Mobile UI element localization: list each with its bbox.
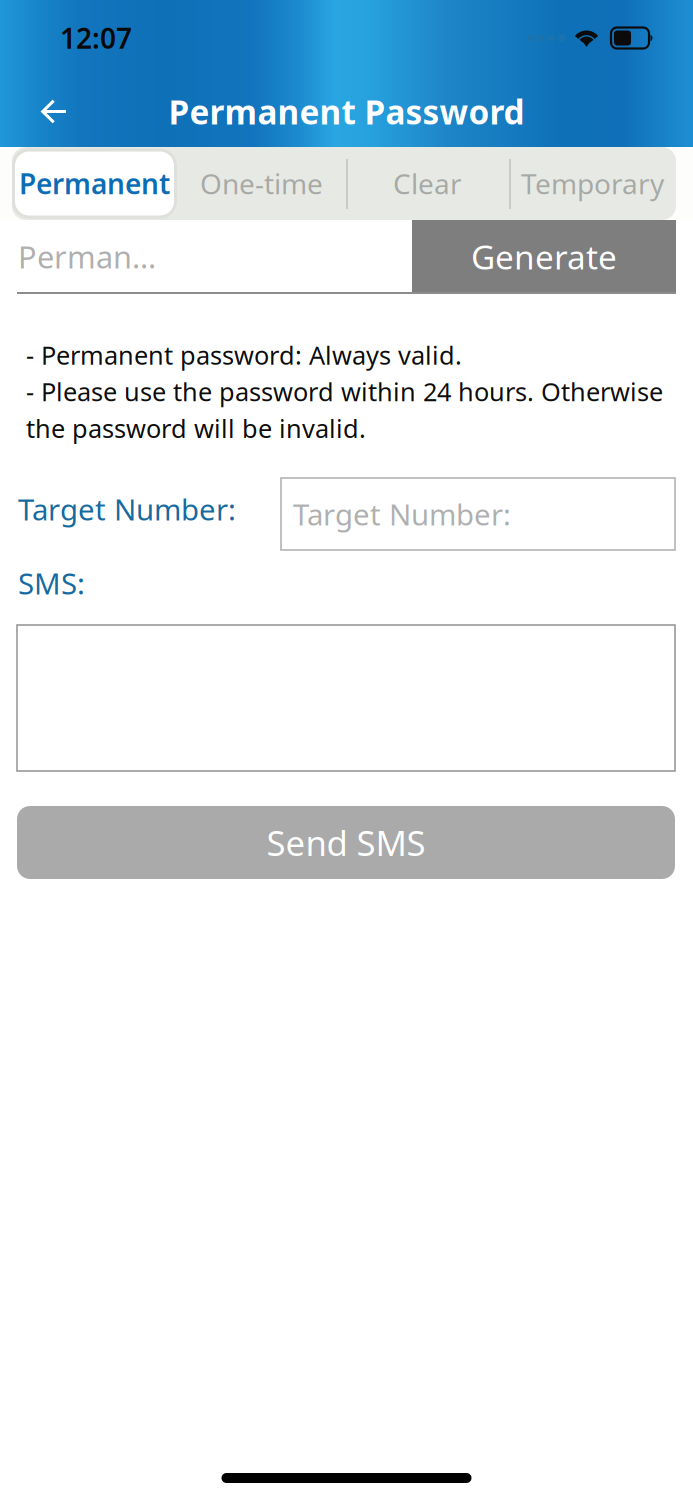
staticText: Permanent Password: [168, 89, 524, 134]
button[interactable]: Temporary: [509, 147, 676, 220]
staticText: Perman...: [18, 236, 156, 277]
staticText: - Please use the password within 24 hour…: [26, 375, 663, 445]
staticText: - Permanent password: Always valid.: [26, 338, 462, 372]
staticText: Generate: [471, 234, 617, 279]
staticText: Send SMS: [266, 819, 425, 865]
staticText: 12:07: [60, 19, 132, 57]
button[interactable]: Clear: [346, 147, 509, 220]
staticText: Permanent: [19, 165, 170, 202]
staticText: SMS:: [18, 563, 85, 602]
staticText: One-time: [200, 165, 323, 202]
button[interactable]: One-time: [177, 147, 346, 220]
button[interactable]: Generate: [412, 220, 676, 293]
staticText: Temporary: [521, 165, 664, 202]
button[interactable]: Permanent: [0, 147, 177, 220]
staticText: Target Number:: [18, 489, 236, 528]
button[interactable]: Send SMS: [17, 806, 675, 879]
button[interactable]: Back: [20, 80, 88, 142]
staticText: Clear: [393, 165, 462, 202]
staticText: Target Number:: [293, 494, 511, 533]
